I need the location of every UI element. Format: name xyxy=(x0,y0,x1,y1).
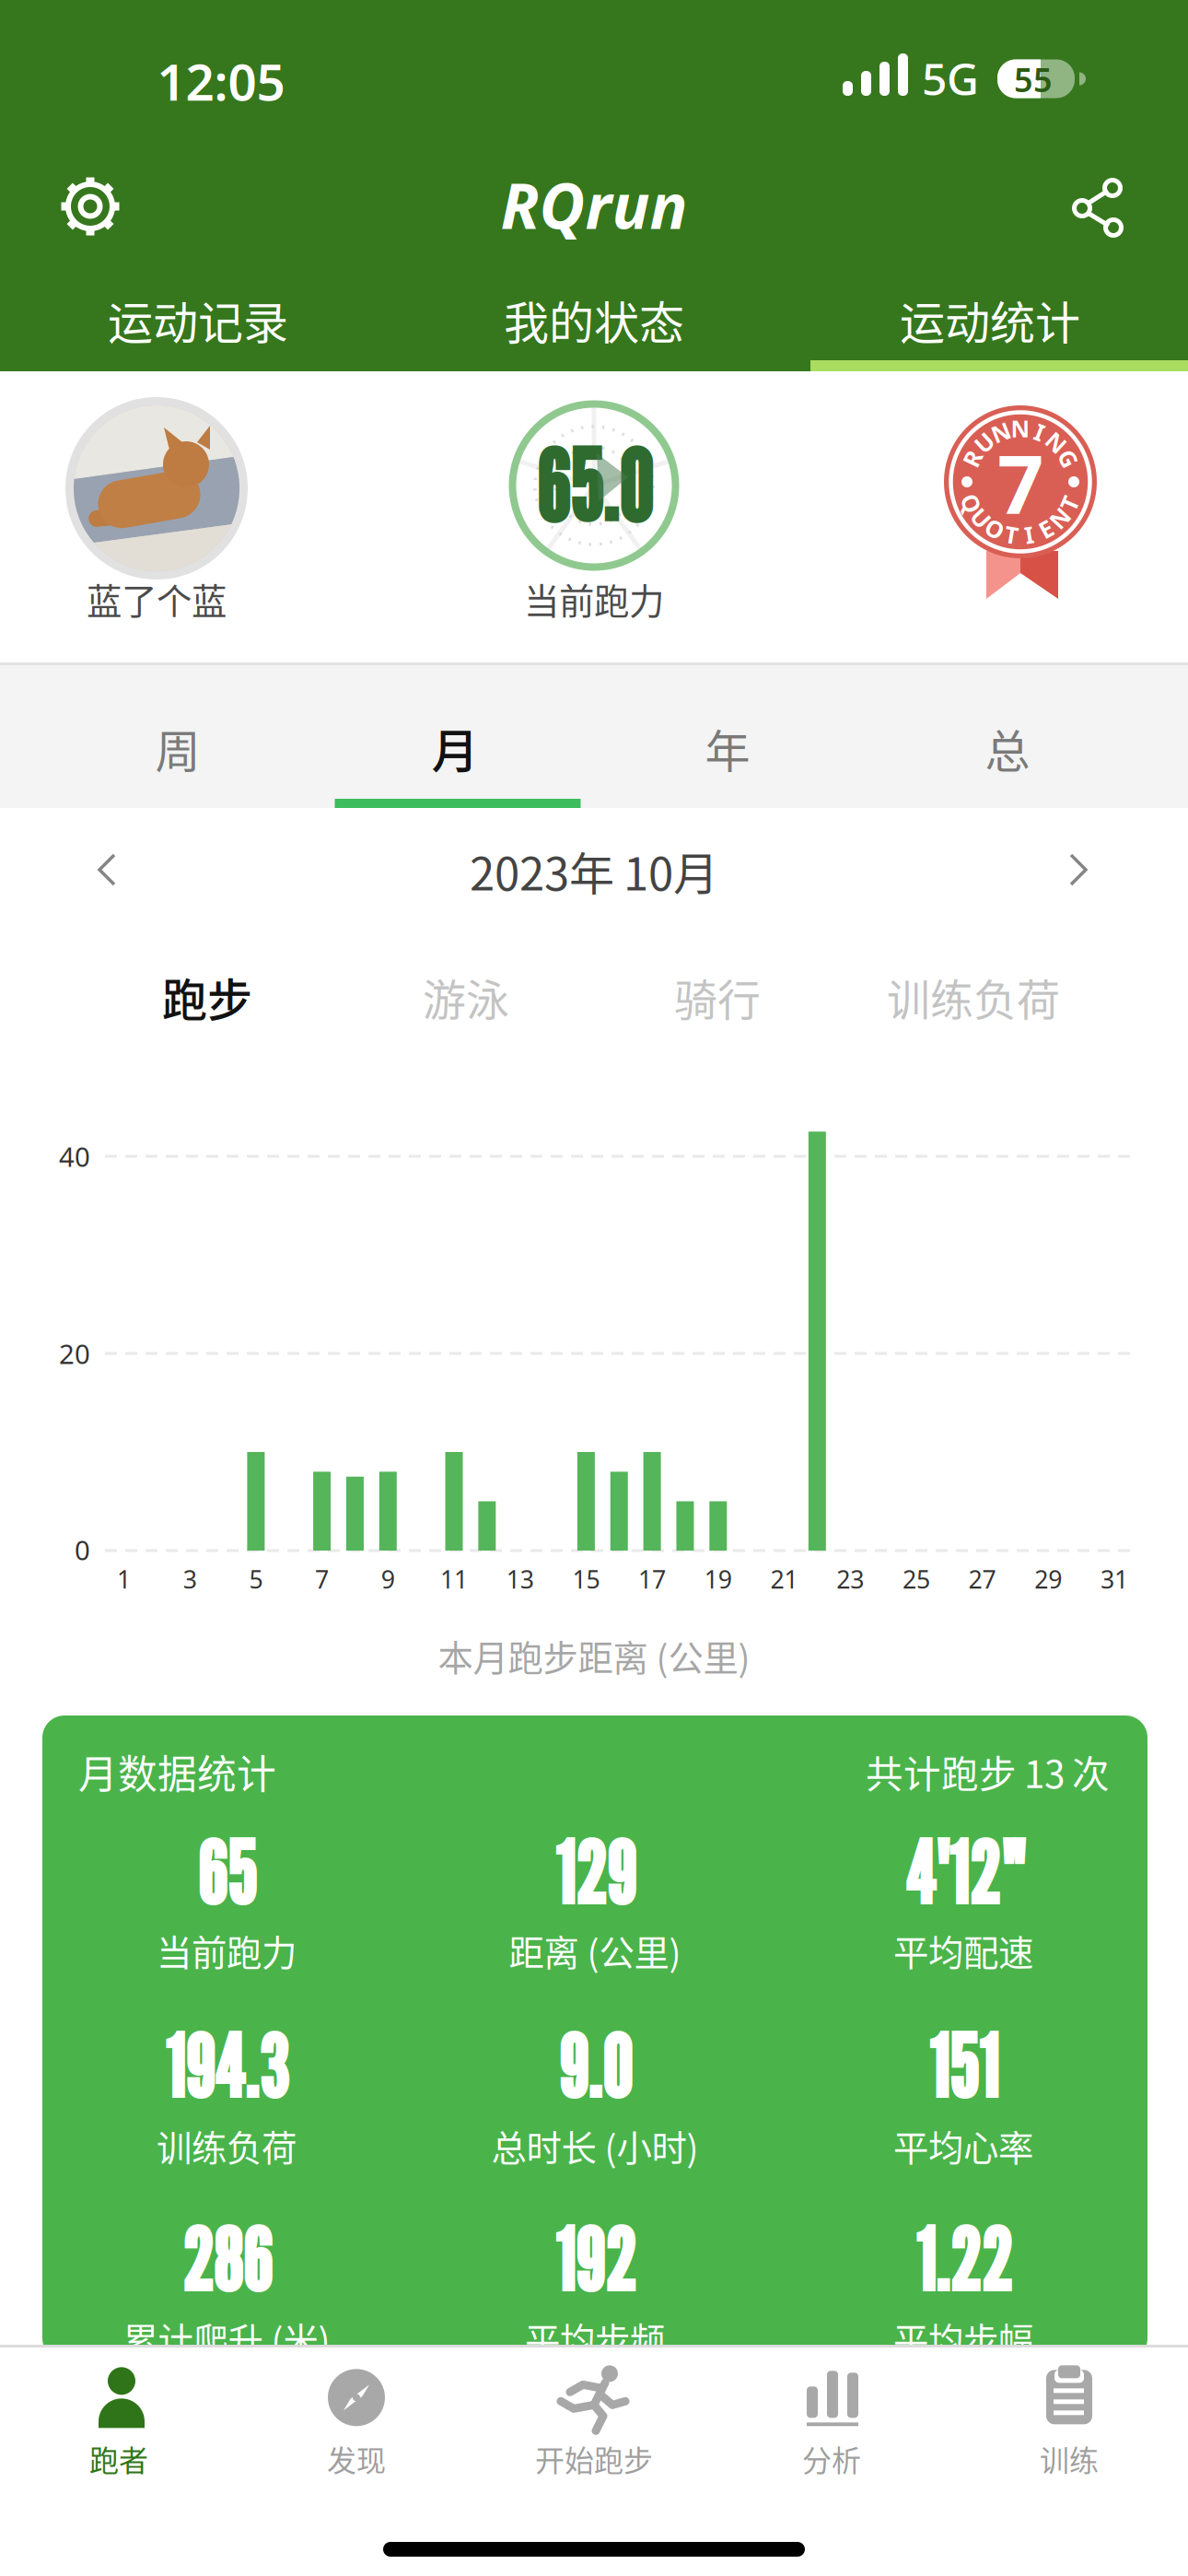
staticText: 12:05 xyxy=(157,48,285,115)
staticText: 4'12" xyxy=(905,1822,1022,1924)
button[interactable]: 周 xyxy=(155,715,200,781)
staticText: 开始跑步 xyxy=(535,2437,653,2480)
staticText: N xyxy=(991,417,1011,448)
staticText: 平均步幅 xyxy=(893,2313,1033,2364)
staticText: 年 xyxy=(705,715,750,781)
staticText: 27 xyxy=(968,1563,996,1595)
button[interactable]: 我的状态 xyxy=(504,287,684,352)
staticText: 15 xyxy=(572,1563,600,1595)
button[interactable]: Next month xyxy=(1062,853,1093,886)
staticText: 11 xyxy=(440,1563,468,1595)
button[interactable]: 发现 xyxy=(323,2364,390,2480)
staticText: 25 xyxy=(902,1563,930,1595)
staticText: 平均步频 xyxy=(525,2313,665,2364)
staticText: 骑行 xyxy=(674,966,761,1028)
button[interactable]: 训练 xyxy=(1036,2364,1102,2480)
staticText: 训练负荷 xyxy=(887,966,1060,1028)
staticText: E xyxy=(1039,513,1052,544)
staticText: 共计跑步 13 次 xyxy=(866,1745,1110,1799)
button[interactable]: 年 xyxy=(705,715,750,781)
staticText: 平均心率 xyxy=(893,2120,1033,2171)
button[interactable]: 月 xyxy=(431,714,478,782)
staticText: 9 xyxy=(381,1563,395,1595)
staticText: 5 xyxy=(249,1563,263,1595)
staticText: 2023年 10月 xyxy=(470,838,718,903)
staticText: 31 xyxy=(1101,1563,1128,1595)
staticText: R xyxy=(965,443,980,474)
staticText: 分析 xyxy=(802,2437,861,2480)
staticText: U xyxy=(972,502,990,533)
staticText: N xyxy=(1050,502,1069,533)
staticText: 月 xyxy=(431,714,478,782)
staticText: 3 xyxy=(183,1563,197,1595)
staticText: 29 xyxy=(1034,1563,1062,1595)
staticText: 总时长 (小时) xyxy=(491,2120,699,2171)
staticText: 运动统计 xyxy=(900,287,1080,352)
button[interactable]: Previous month xyxy=(92,853,123,886)
button[interactable]: 开始跑步 xyxy=(535,2364,653,2480)
staticText: 5G xyxy=(922,49,979,108)
staticText: 跑者 xyxy=(89,2437,148,2480)
staticText: 17 xyxy=(638,1563,666,1595)
staticText: 129 xyxy=(554,1822,635,1924)
staticText: 平均配速 xyxy=(893,1925,1033,1976)
staticText: 21 xyxy=(770,1563,798,1595)
button[interactable]: 跑者 xyxy=(86,2364,152,2480)
staticText: T xyxy=(1005,519,1018,550)
button[interactable]: Share xyxy=(1073,181,1126,235)
staticText: 蓝了个蓝 xyxy=(87,573,227,624)
staticText: 9.0 xyxy=(558,2015,632,2118)
staticText: 23 xyxy=(836,1563,864,1595)
staticText: I xyxy=(1025,519,1034,550)
staticText: 训练 xyxy=(1040,2437,1099,2480)
button[interactable]: 骑行 xyxy=(674,966,761,1028)
staticText: 我的状态 xyxy=(504,287,684,352)
staticText: 游泳 xyxy=(423,966,509,1028)
staticText: 55 xyxy=(1014,57,1053,101)
staticText: N xyxy=(1011,413,1030,444)
staticText: N xyxy=(1047,427,1066,458)
staticText: 当前跑力 xyxy=(524,573,664,624)
staticText: 总 xyxy=(985,715,1030,781)
staticText: 跑步 xyxy=(162,964,252,1030)
staticText: 运动记录 xyxy=(108,287,288,352)
staticText: 本月跑步距离 (公里) xyxy=(438,1630,750,1681)
button[interactable]: 总 xyxy=(985,715,1030,781)
staticText: 194.3 xyxy=(164,2015,289,2118)
staticText: 当前跑力 xyxy=(157,1925,297,1976)
staticText: 40 xyxy=(59,1138,90,1174)
staticText: 65.0 xyxy=(536,427,652,544)
staticText: 距离 (公里) xyxy=(509,1925,681,1976)
staticText: I xyxy=(1035,417,1044,447)
button[interactable]: 运动记录 xyxy=(108,287,288,352)
staticText: 周 xyxy=(155,715,200,781)
staticText: 20 xyxy=(59,1335,90,1371)
button[interactable]: 游泳 xyxy=(423,966,509,1028)
staticText: 19 xyxy=(704,1563,732,1595)
staticText: 训练负荷 xyxy=(157,2120,297,2171)
staticText: Q xyxy=(962,488,981,519)
staticText: T xyxy=(1062,488,1076,519)
staticText: 1.22 xyxy=(915,2209,1012,2311)
button[interactable]: 训练负荷 xyxy=(887,966,1060,1028)
staticText: 7 xyxy=(315,1563,329,1595)
button[interactable]: 运动统计 xyxy=(900,287,1080,352)
button[interactable]: 跑步 xyxy=(162,964,252,1030)
staticText: RQrun xyxy=(501,163,687,246)
staticText: 0 xyxy=(75,1532,90,1568)
staticText: 1 xyxy=(117,1563,131,1595)
staticText: 累计爬升 (米) xyxy=(123,2313,330,2364)
staticText: G xyxy=(1060,443,1077,474)
button[interactable]: Settings xyxy=(60,176,121,237)
button[interactable]: 蓝了个蓝 xyxy=(65,397,248,580)
staticText: 65 xyxy=(197,1822,256,1924)
staticText: 发现 xyxy=(327,2437,386,2480)
button[interactable]: 分析 xyxy=(798,2364,865,2480)
staticText: 286 xyxy=(181,2209,272,2311)
staticText: 192 xyxy=(554,2209,635,2311)
staticText: 月数据统计 xyxy=(78,1743,276,1800)
staticText: 151 xyxy=(928,2015,998,2118)
staticText: 7 xyxy=(997,429,1043,537)
staticText: U xyxy=(975,427,993,458)
staticText: O xyxy=(986,513,1004,544)
